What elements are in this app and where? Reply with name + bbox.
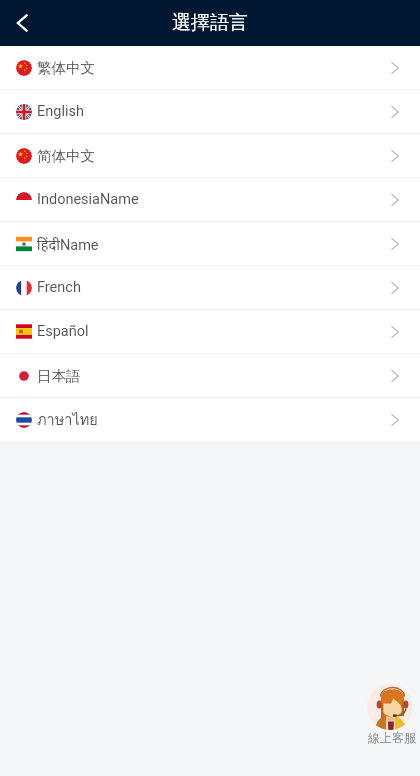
staticText: 繁体中文 [37, 59, 95, 77]
button[interactable]: IndonesiaName [0, 178, 420, 221]
staticText: 選擇語言 [172, 11, 248, 35]
staticText: 線上客服 [368, 730, 416, 745]
button[interactable]: 日本語 [0, 354, 420, 397]
staticText: हिंदीName [37, 234, 99, 254]
staticText: IndonesiaName [37, 191, 139, 208]
button[interactable]: French [0, 266, 420, 309]
button[interactable]: Online customer service [368, 684, 416, 745]
button[interactable]: Español [0, 310, 420, 353]
staticText: English [37, 103, 84, 120]
staticText: French [37, 279, 81, 296]
button[interactable]: ภาษาไทย [0, 398, 420, 441]
button[interactable]: 繁体中文 [0, 46, 420, 89]
staticText: 日本語 [37, 367, 81, 385]
button[interactable]: 简体中文 [0, 134, 420, 177]
staticText: Español [37, 323, 89, 340]
staticText: ภาษาไทย [37, 408, 98, 431]
button[interactable]: English [0, 90, 420, 133]
button[interactable]: हिंदीName [0, 222, 420, 265]
staticText: 简体中文 [37, 147, 95, 165]
button[interactable]: Back [0, 1, 44, 45]
